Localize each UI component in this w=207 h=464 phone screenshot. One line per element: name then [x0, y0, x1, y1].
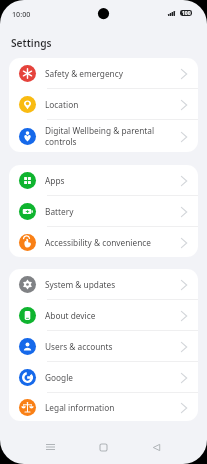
staticText: Settings [11, 36, 52, 50]
button[interactable]: Google [9, 362, 198, 392]
button[interactable]: Digital Wellbeing & parental controls [9, 120, 198, 152]
button[interactable]: About device [9, 300, 198, 330]
staticText: System & updates [45, 279, 181, 290]
staticText: 10:00 [12, 9, 31, 19]
button[interactable]: Apps [9, 165, 198, 195]
button[interactable]: Safety & emergency [9, 58, 198, 88]
staticText: Legal information [45, 402, 181, 413]
staticText: 100 [182, 10, 191, 16]
button[interactable]: System & updates [9, 269, 198, 299]
button[interactable]: Home [99, 440, 108, 454]
staticText: About device [45, 310, 181, 321]
button[interactable]: Recent apps [46, 440, 55, 454]
staticText: Location [45, 99, 181, 110]
button[interactable]: Legal information [9, 393, 198, 421]
staticText: Users & accounts [45, 341, 181, 352]
button[interactable]: Accessibility & convenience [9, 227, 198, 257]
staticText: Google [45, 372, 181, 383]
button[interactable]: Location [9, 89, 198, 119]
staticText: Apps [45, 175, 181, 186]
staticText: Accessibility & convenience [45, 237, 181, 248]
button[interactable]: Users & accounts [9, 331, 198, 361]
button[interactable]: Battery [9, 196, 198, 226]
staticText: Battery [45, 206, 181, 217]
button[interactable]: Back [152, 440, 161, 454]
staticText: Safety & emergency [45, 68, 181, 79]
staticText: Digital Wellbeing & parental controls [45, 125, 181, 147]
